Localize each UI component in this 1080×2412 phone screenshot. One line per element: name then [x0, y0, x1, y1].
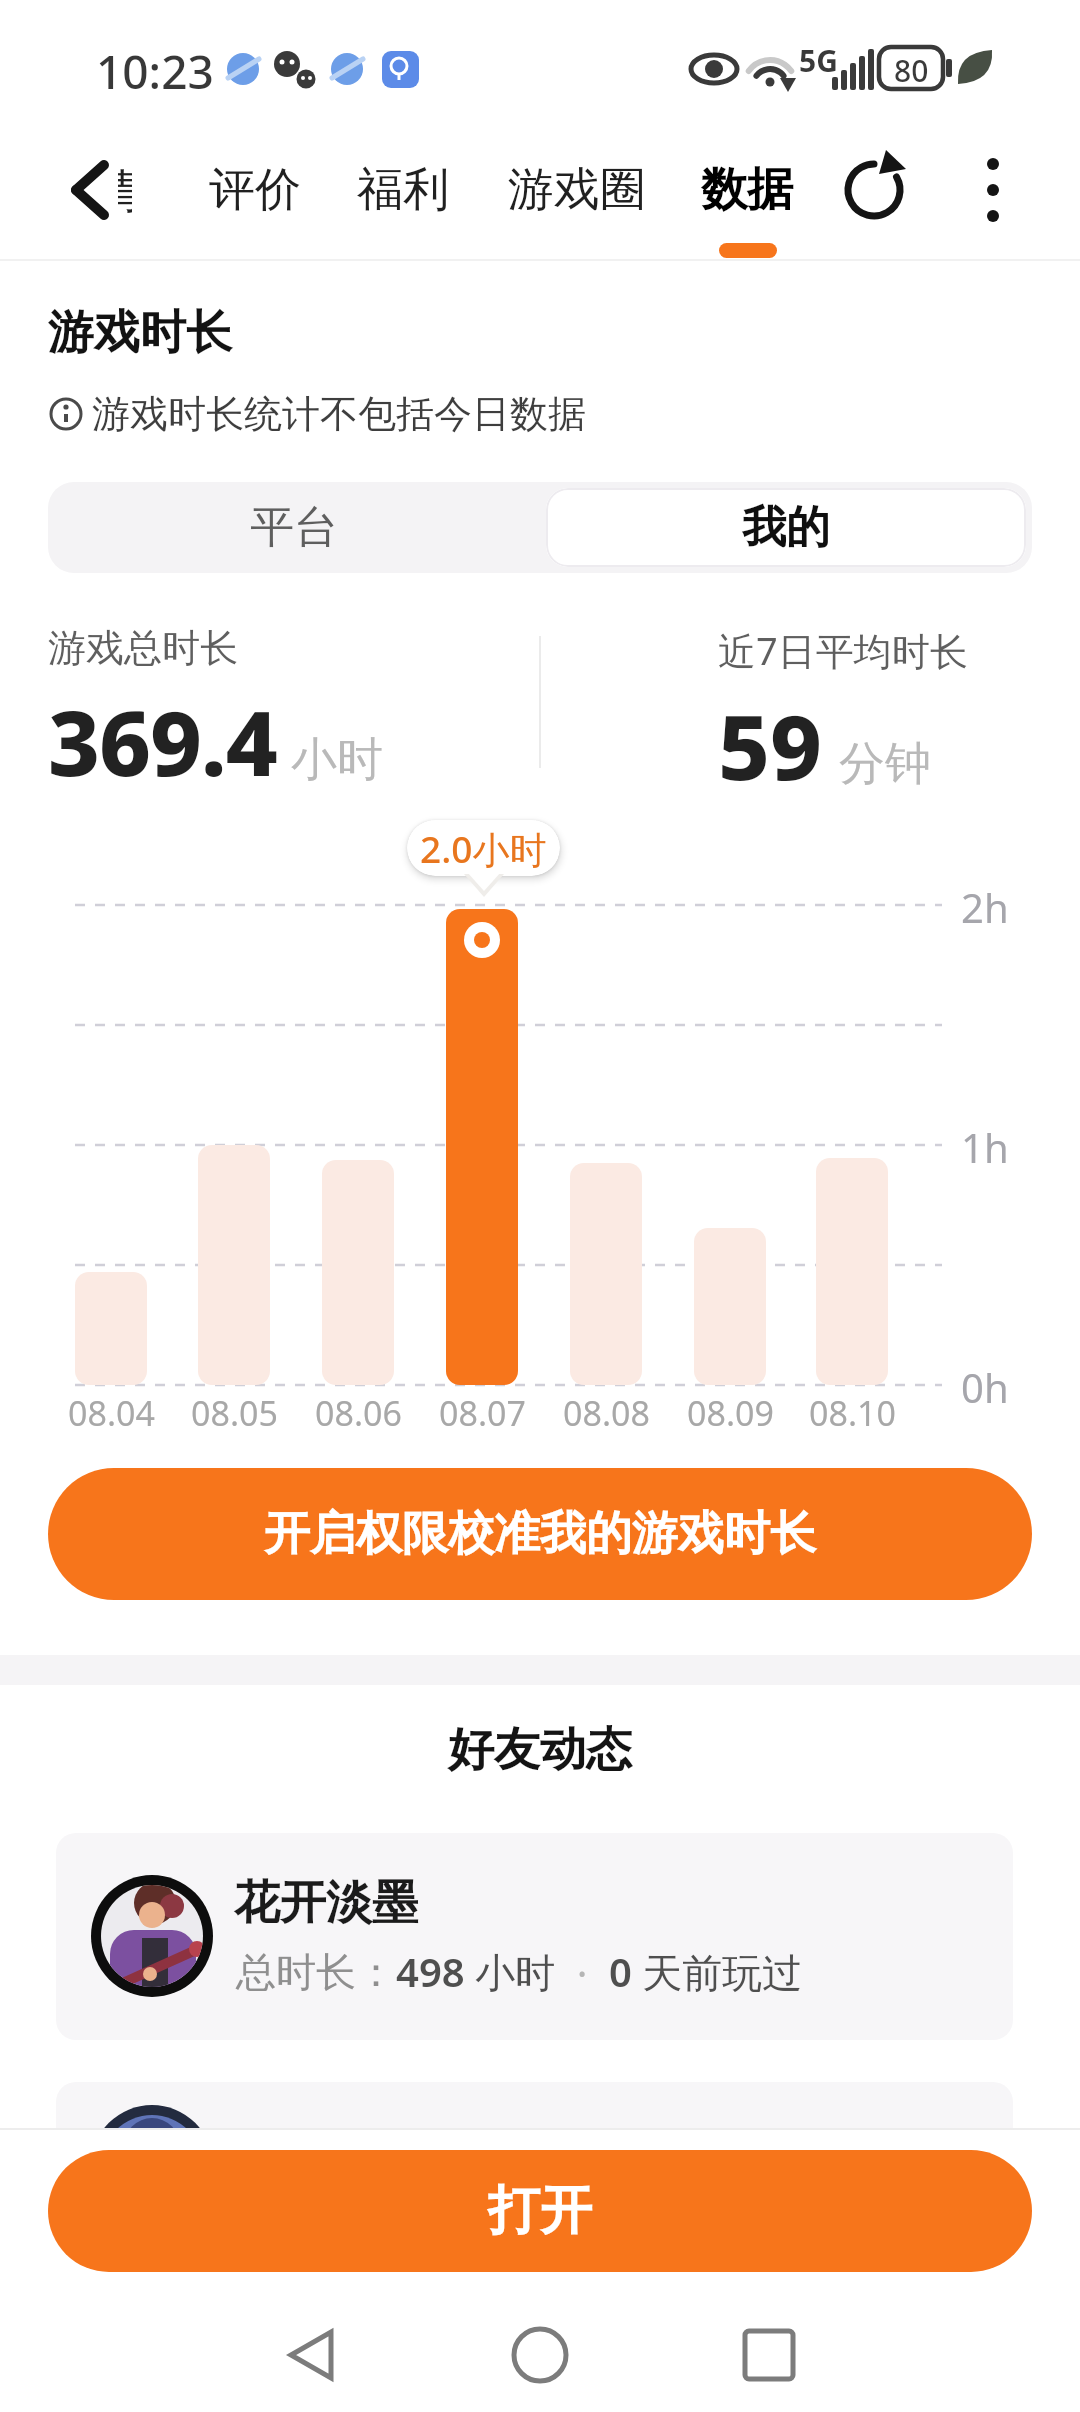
button[interactable]: 打开 — [48, 2150, 1032, 2272]
staticText: 08.09 — [687, 1390, 774, 1434]
button[interactable] — [56, 1833, 1013, 2040]
button[interactable] — [965, 150, 1021, 230]
staticText: 369.4 — [48, 680, 277, 803]
staticText: 08.08 — [563, 1390, 650, 1434]
staticText: 福利 — [357, 161, 449, 219]
button[interactable]: 游戏圈 — [487, 150, 667, 230]
staticText: 08.05 — [191, 1390, 278, 1434]
staticText: 分钟 — [839, 735, 931, 793]
staticText: 我的 — [742, 500, 830, 555]
staticText: 498 小时 — [396, 1944, 556, 1999]
staticText: 08.06 — [315, 1390, 402, 1434]
staticText: 近7日平均时长 — [718, 624, 968, 676]
staticText: 游戏时长 — [48, 304, 232, 362]
staticText: 59 — [718, 684, 823, 807]
staticText: 0 天前玩过 — [609, 1944, 803, 1999]
staticText: · — [556, 1945, 609, 1999]
staticText: 08.04 — [68, 1390, 155, 1434]
staticText: 游戏总时长 — [48, 624, 238, 672]
staticText: 08.10 — [809, 1390, 896, 1434]
button[interactable] — [270, 2320, 350, 2400]
staticText: 游戏时长统计不包括今日数据 — [92, 390, 586, 438]
button[interactable]: 我的 — [546, 488, 1026, 567]
button[interactable] — [500, 2320, 580, 2400]
button[interactable]: 平台 — [48, 482, 540, 573]
staticText: 好友动态 — [448, 1721, 632, 1779]
button[interactable] — [730, 2320, 810, 2400]
staticText: 1h — [961, 1120, 1009, 1170]
staticText: 花开淡墨 — [234, 1874, 418, 1932]
staticText: 数据 — [701, 161, 793, 219]
staticText: 评价 — [209, 161, 301, 219]
staticText: 总时长： — [236, 1947, 396, 1997]
staticText: 2.0小时 — [420, 823, 547, 874]
staticText: 08.07 — [439, 1390, 526, 1434]
staticText: 80 — [894, 50, 929, 86]
staticText: 10:23 — [96, 40, 214, 103]
staticText: 游戏圈 — [508, 161, 646, 219]
staticText: 打开 — [488, 2178, 592, 2244]
staticText: 2h — [961, 880, 1009, 930]
button[interactable]: 数据 — [677, 150, 817, 230]
staticText: 0h — [961, 1360, 1009, 1410]
button[interactable]: 开启权限校准我的游戏时长 — [48, 1468, 1032, 1600]
staticText: 小时 — [291, 731, 383, 789]
staticText: 开启权限校准我的游戏时长 — [264, 1505, 816, 1563]
button[interactable]: 评价 — [185, 150, 325, 230]
button[interactable] — [60, 150, 120, 230]
button[interactable]: 福利 — [333, 150, 473, 230]
staticText: 青 — [118, 163, 132, 219]
button[interactable] — [840, 155, 910, 225]
staticText: 平台 — [250, 500, 338, 555]
staticText: 5G — [799, 40, 838, 74]
